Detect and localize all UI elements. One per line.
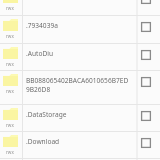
button[interactable]: Select item xyxy=(141,77,151,87)
button[interactable]: Folder xyxy=(0,70,160,104)
staticText: .Download xyxy=(26,137,134,146)
staticText: rwx xyxy=(6,149,14,155)
other: Folder xyxy=(3,108,18,120)
button[interactable]: Select item xyxy=(141,111,151,121)
other: Folder xyxy=(3,74,18,86)
staticText: BB088065402BACA6010656B7ED xyxy=(26,76,134,85)
staticText: rwx xyxy=(6,33,14,39)
staticText: .7934039a xyxy=(26,21,134,30)
button[interactable]: Folder xyxy=(0,15,160,43)
staticText: 9B26D8 xyxy=(26,85,51,94)
button[interactable]: Folder xyxy=(0,158,160,160)
button[interactable]: Folder xyxy=(0,131,160,158)
staticText: rwx xyxy=(6,5,14,11)
staticText: rwx xyxy=(6,61,14,67)
staticText: .DataStorage xyxy=(26,110,134,119)
other: Folder xyxy=(3,19,18,31)
staticText: rwx xyxy=(6,122,14,128)
button[interactable]: Select item xyxy=(141,22,151,32)
staticText: .AutoDiu xyxy=(26,49,134,58)
button[interactable]: Select item xyxy=(141,0,151,4)
button[interactable]: Folder xyxy=(0,43,160,70)
other: Folder xyxy=(3,135,18,147)
button[interactable]: Folder xyxy=(0,104,160,131)
button[interactable]: Select item xyxy=(141,50,151,60)
staticText: rwx xyxy=(6,88,14,94)
button[interactable]: Folder xyxy=(0,0,160,15)
button[interactable]: Select item xyxy=(141,138,151,148)
other: Folder xyxy=(3,47,18,59)
